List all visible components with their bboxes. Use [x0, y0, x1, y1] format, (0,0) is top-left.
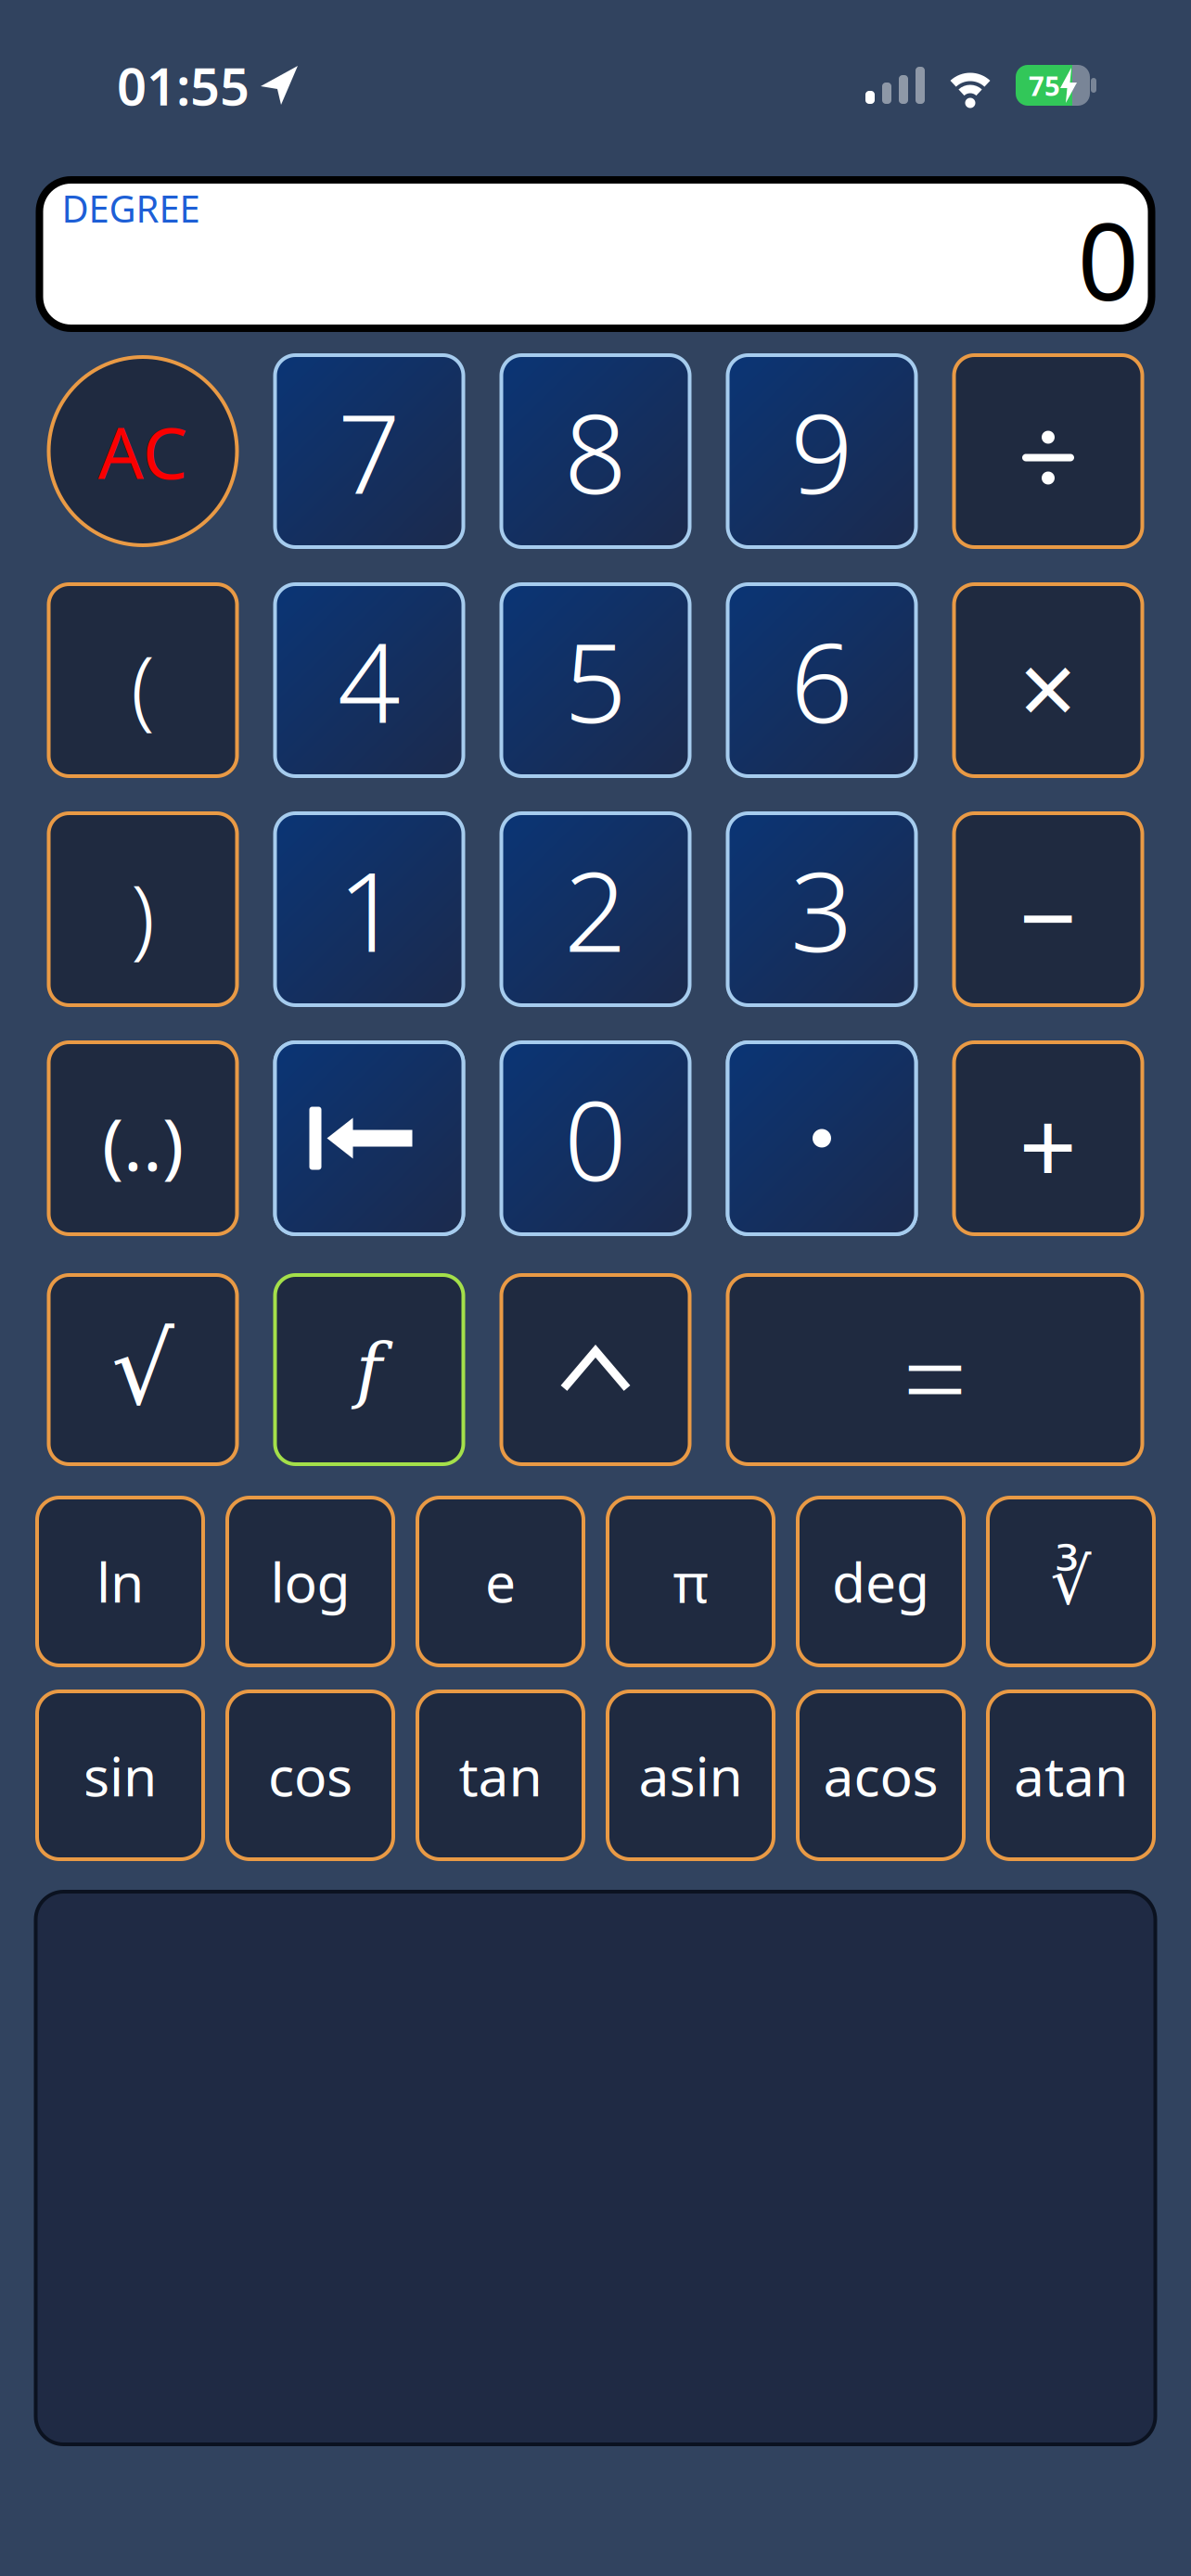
button[interactable]: (..)	[47, 1040, 239, 1236]
button[interactable]: 0	[499, 1040, 692, 1236]
button[interactable]: sin	[35, 1690, 205, 1861]
button[interactable]: √	[47, 1273, 239, 1466]
staticText: 6	[790, 607, 853, 753]
button[interactable]: 6	[726, 582, 918, 778]
staticText: −	[1019, 848, 1077, 983]
button[interactable]: tan	[416, 1690, 585, 1861]
staticText: atan	[1014, 1739, 1128, 1811]
staticText: )	[131, 857, 155, 972]
staticText: +	[1019, 1077, 1077, 1212]
button[interactable]: Power	[499, 1273, 692, 1466]
staticText: DEGREE	[62, 184, 200, 233]
button[interactable]: 7	[273, 353, 465, 549]
button[interactable]: cos	[225, 1690, 395, 1861]
staticText: sin	[83, 1739, 157, 1811]
button[interactable]: 3	[726, 811, 918, 1007]
button[interactable]: 8	[499, 353, 692, 549]
staticText: 75	[1029, 67, 1060, 103]
staticText: 0	[1077, 187, 1139, 330]
button[interactable]: log	[225, 1496, 395, 1667]
button[interactable]: Backspace	[273, 1040, 465, 1236]
staticText: AC	[98, 404, 188, 499]
button[interactable]: (	[47, 582, 239, 778]
button[interactable]: AC	[47, 353, 239, 549]
staticText: 3	[790, 836, 853, 982]
staticText: (..)	[102, 1095, 184, 1191]
staticText: 01:55	[117, 51, 250, 120]
button[interactable]: π	[606, 1496, 775, 1667]
staticText: =	[903, 1301, 967, 1452]
staticText: tan	[459, 1739, 542, 1811]
staticText: ln	[96, 1545, 144, 1618]
button[interactable]: e	[416, 1496, 585, 1667]
button[interactable]: Decimal point	[726, 1040, 918, 1236]
staticText: deg	[832, 1545, 929, 1618]
staticText: 0	[564, 1065, 627, 1211]
staticText: 1	[338, 836, 401, 982]
staticText: 9	[790, 378, 853, 524]
staticText: ∛	[1050, 1545, 1091, 1618]
staticText: 2	[564, 836, 627, 982]
button[interactable]: asin	[606, 1690, 775, 1861]
staticText: (	[131, 628, 155, 743]
staticText: √	[111, 1314, 174, 1426]
staticText: e	[485, 1545, 516, 1618]
button[interactable]: atan	[986, 1690, 1156, 1861]
button[interactable]: ln	[35, 1496, 205, 1667]
button[interactable]: −	[952, 811, 1144, 1007]
button[interactable]: 2	[499, 811, 692, 1007]
button[interactable]: +	[952, 1040, 1144, 1236]
staticText: 5	[564, 607, 627, 753]
staticText: π	[673, 1545, 708, 1618]
button[interactable]: )	[47, 811, 239, 1007]
button[interactable]: 1	[273, 811, 465, 1007]
staticText: ×	[1019, 619, 1077, 754]
button[interactable]: ×	[952, 582, 1144, 778]
button[interactable]: =	[726, 1273, 1144, 1466]
staticText: 7	[338, 378, 401, 524]
button[interactable]: deg	[796, 1496, 966, 1667]
staticText: cos	[268, 1739, 352, 1811]
button[interactable]: acos	[796, 1690, 966, 1861]
staticText: acos	[823, 1739, 938, 1811]
button[interactable]: 5	[499, 582, 692, 778]
button[interactable]: Divide	[952, 353, 1144, 549]
staticText: asin	[639, 1739, 743, 1811]
button[interactable]: Function	[273, 1273, 465, 1466]
staticText: f	[356, 1328, 383, 1411]
button[interactable]: ∛	[986, 1496, 1156, 1667]
button[interactable]: 9	[726, 353, 918, 549]
staticText: 4	[338, 607, 401, 753]
staticText: log	[270, 1545, 350, 1618]
staticText: 8	[564, 378, 627, 524]
button[interactable]: 4	[273, 582, 465, 778]
